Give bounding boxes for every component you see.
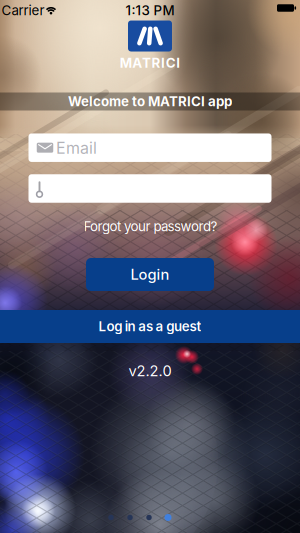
- staticText: Log in as a guest: [99, 319, 201, 334]
- staticText: Login: [130, 266, 169, 283]
- button[interactable]: Forgot your password?: [79, 215, 221, 238]
- button[interactable]: Login: [86, 258, 214, 291]
- button[interactable]: Email: [28, 133, 271, 162]
- staticText: MATRICI: [120, 55, 180, 71]
- staticText: Carrier: [1, 3, 44, 18]
- staticText: Forgot your password?: [83, 219, 217, 234]
- staticText: 1:13 PM: [125, 3, 174, 18]
- staticText: Welcome to MATRICI app: [68, 94, 232, 109]
- staticText: Email: [56, 138, 97, 157]
- button[interactable]: Log in as a guest: [0, 310, 300, 343]
- button[interactable]: Password: [28, 174, 271, 203]
- staticText: v2.2.0: [128, 362, 171, 380]
